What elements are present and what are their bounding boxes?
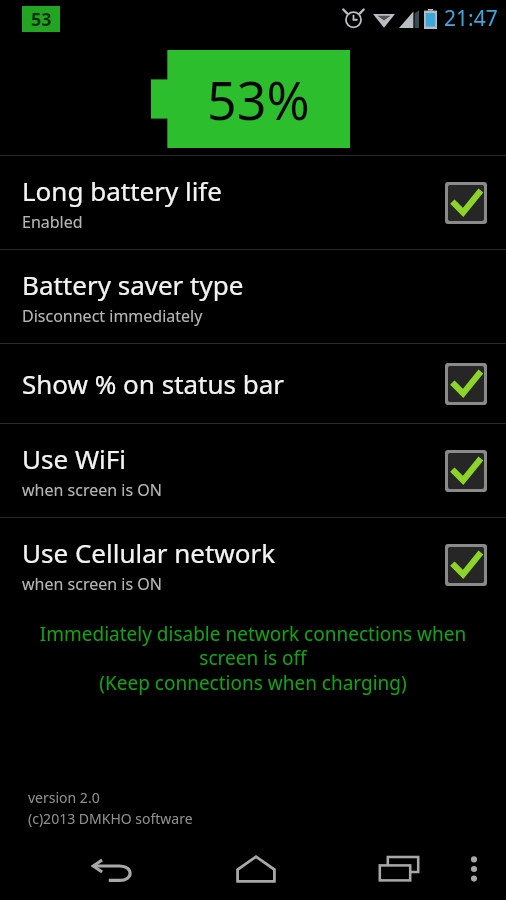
button[interactable]: Use WiFi [0,424,506,517]
staticText: Use Cellular network [22,535,276,570]
staticText: when screen is ON [22,573,162,595]
staticText: Show % on status bar [22,366,285,401]
button[interactable]: Toggle setting [444,449,488,493]
staticText: 53 [31,7,52,32]
staticText: (Keep connections when charging) [28,670,478,696]
staticText: 53% [207,64,310,135]
button[interactable]: Long battery life [0,156,506,249]
staticText: Long battery life [22,173,222,208]
staticText: Use WiFi [22,441,126,476]
staticText: Disconnect immediately [22,305,203,327]
button[interactable]: Battery saver type [0,250,506,343]
button[interactable]: Use Cellular network [0,518,506,611]
staticText: version 2.0 [28,788,100,807]
button[interactable]: Toggle setting [444,543,488,587]
staticText: Immediately disable network connections … [28,621,478,670]
staticText: when screen is ON [22,479,162,501]
button[interactable]: Recent apps [356,838,442,900]
staticText: (c)2013 DMKHO software [28,809,193,828]
button[interactable]: More options [450,838,498,900]
staticText: 21:47 [444,4,498,33]
button[interactable]: Back [70,838,156,900]
staticText: Enabled [22,211,83,233]
staticText: Battery saver type [22,267,244,302]
button[interactable]: Show % on status bar [0,344,506,423]
button[interactable]: Toggle setting [444,362,488,406]
button[interactable]: Home [213,838,299,900]
button[interactable]: Toggle setting [444,181,488,225]
